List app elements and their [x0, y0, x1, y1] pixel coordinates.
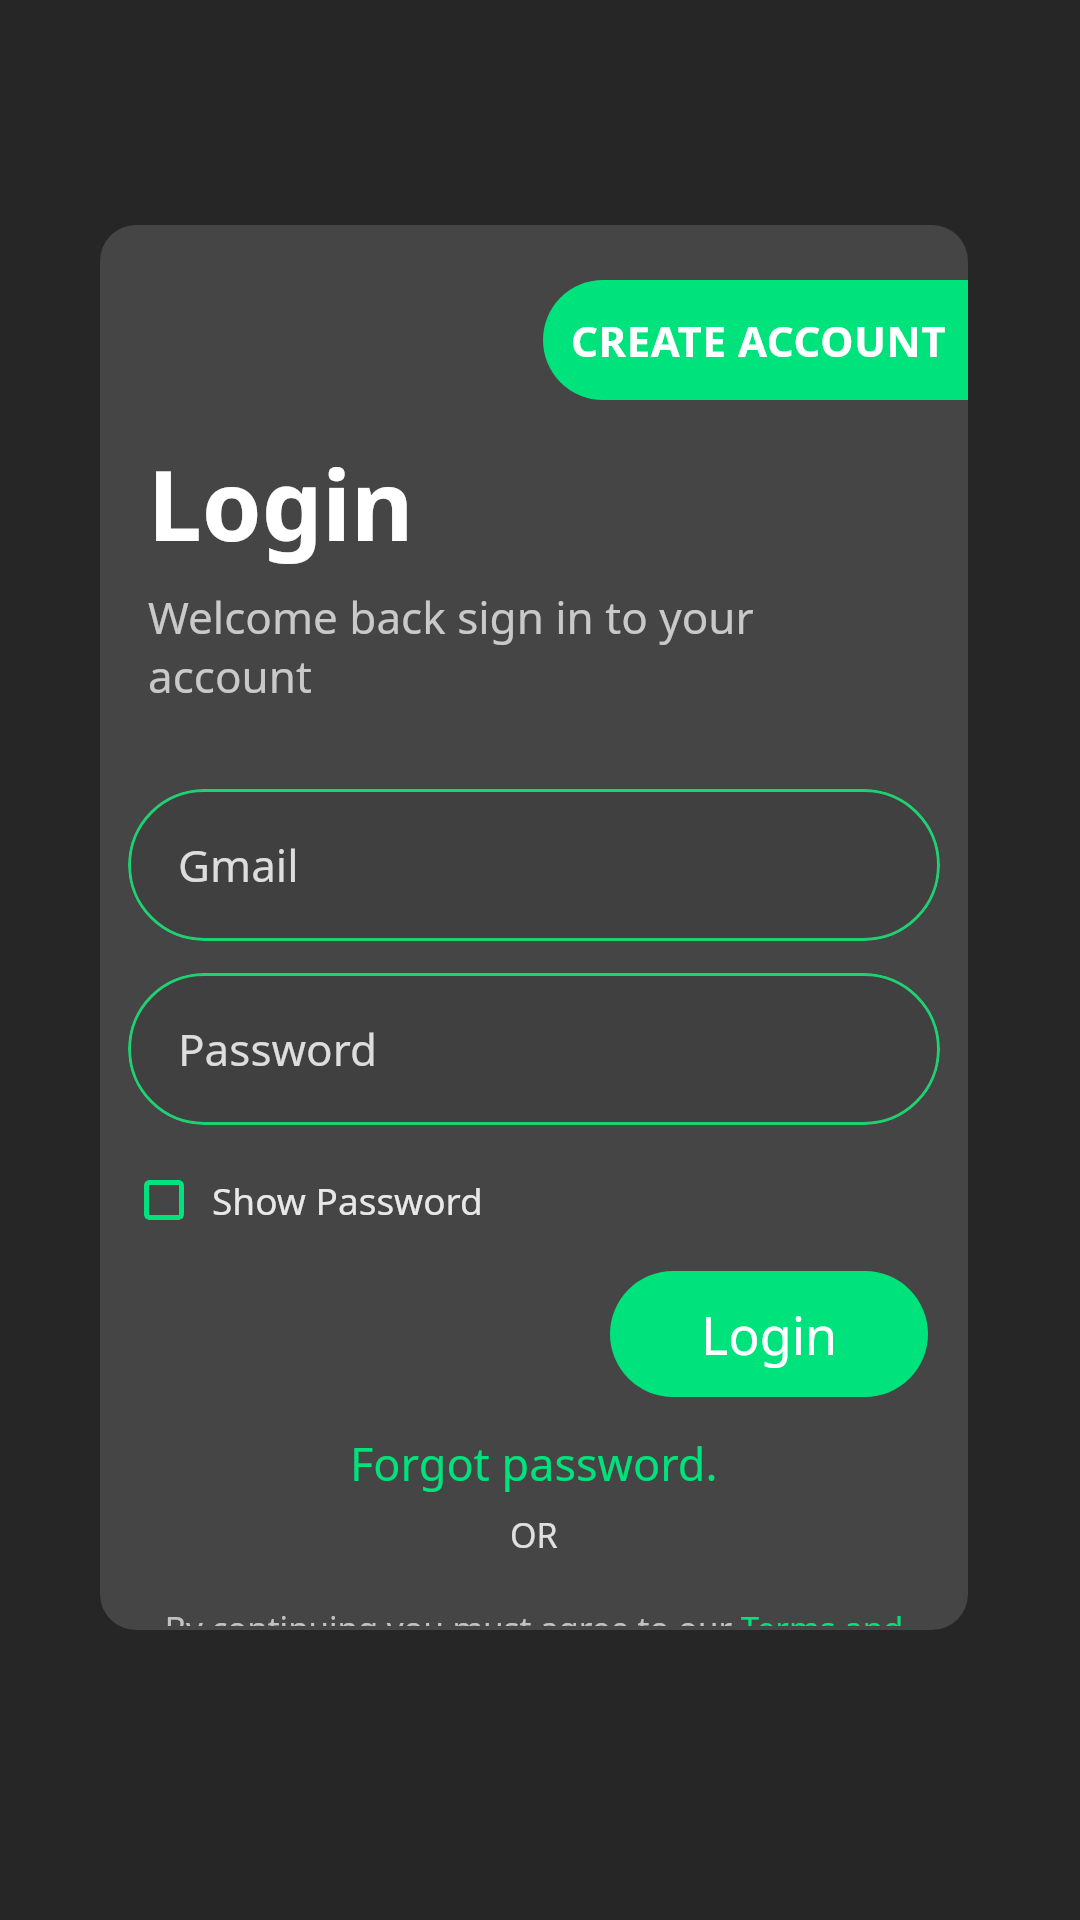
- button[interactable]: Forgot password.: [338, 1429, 730, 1498]
- staticText: Password: [178, 1019, 378, 1079]
- button[interactable]: Show Password: [128, 1165, 499, 1235]
- staticText: Show Password: [212, 1175, 483, 1225]
- button[interactable]: Password: [128, 973, 940, 1125]
- staticText: OR: [510, 1512, 558, 1558]
- button[interactable]: Login: [610, 1271, 928, 1397]
- staticText: Welcome back sign in to your account: [148, 587, 828, 705]
- staticText: Login: [148, 438, 414, 569]
- staticText: Forgot password.: [350, 1433, 718, 1494]
- staticText: Gmail: [178, 835, 299, 895]
- staticText: CREATE ACCOUNT: [571, 312, 947, 369]
- button[interactable]: By continuing you must agree to our Term…: [100, 1602, 968, 1630]
- button[interactable]: CREATE ACCOUNT: [543, 280, 968, 400]
- staticText: By continuing you must agree to our Term…: [110, 1606, 958, 1626]
- staticText: Login: [701, 1299, 838, 1370]
- button[interactable]: Gmail: [128, 789, 940, 941]
